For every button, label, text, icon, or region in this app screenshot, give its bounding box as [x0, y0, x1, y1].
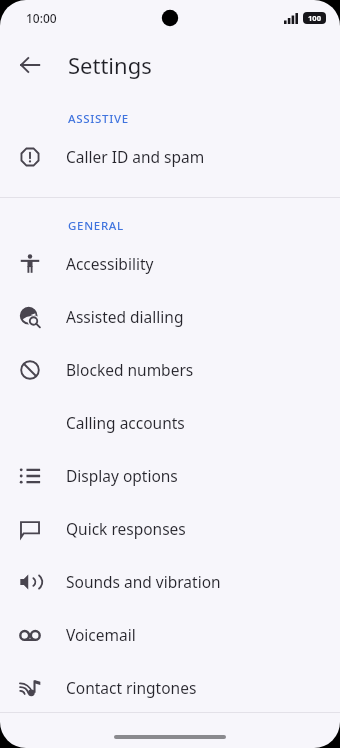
button[interactable]: Display options: [0, 449, 340, 502]
button[interactable]: Sounds and vibration: [0, 555, 340, 608]
staticText: Sounds and vibration: [66, 571, 221, 592]
staticText: GENERAL: [68, 218, 124, 234]
staticText: 10:00: [26, 10, 57, 26]
button[interactable]: Back: [8, 43, 52, 87]
button[interactable]: Quick responses: [0, 502, 340, 555]
button[interactable]: Caller ID and spam: [0, 130, 340, 183]
staticText: Quick responses: [66, 518, 186, 539]
staticText: Accessibility: [66, 253, 154, 274]
staticText: Assisted dialling: [66, 306, 184, 327]
staticText: Blocked numbers: [66, 359, 194, 380]
staticText: Display options: [66, 465, 178, 486]
button[interactable]: Voicemail: [0, 608, 340, 661]
button[interactable]: Blocked numbers: [0, 343, 340, 396]
staticText: ASSISTIVE: [68, 111, 129, 127]
button[interactable]: Calling accounts: [0, 396, 340, 449]
button[interactable]: Assisted dialling: [0, 290, 340, 343]
staticText: Caller ID and spam: [66, 146, 205, 167]
button[interactable]: Contact ringtones: [0, 661, 340, 714]
staticText: Settings: [68, 50, 152, 80]
staticText: 100: [308, 13, 321, 23]
staticText: Contact ringtones: [66, 677, 197, 698]
staticText: Calling accounts: [66, 412, 185, 433]
staticText: Voicemail: [66, 624, 136, 645]
button[interactable]: Accessibility: [0, 237, 340, 290]
